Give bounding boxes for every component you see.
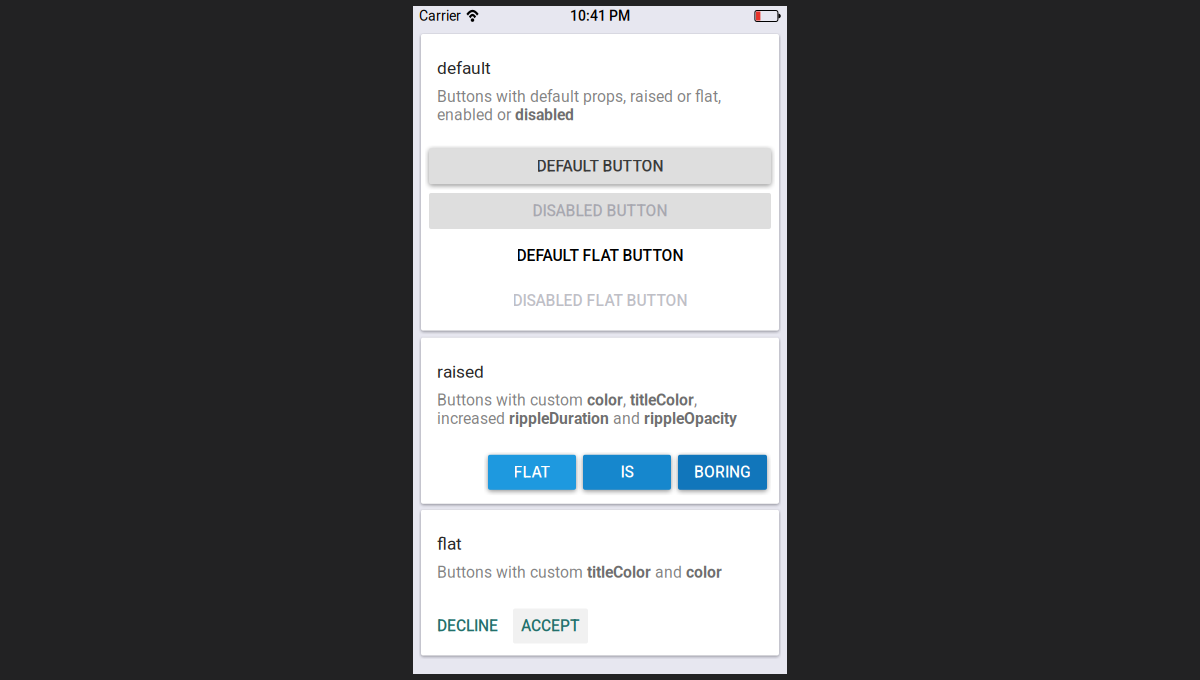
staticText: DEFAULT BUTTON — [536, 157, 663, 175]
button[interactable]: IS — [583, 455, 671, 490]
button[interactable]: DISABLED BUTTON — [429, 193, 771, 229]
staticText: increased — [437, 409, 509, 428]
staticText: Buttons with custom — [437, 391, 587, 409]
button[interactable]: BORING — [678, 455, 767, 490]
staticText: rippleDuration — [509, 409, 609, 428]
staticText: , — [694, 391, 697, 409]
staticText: IS — [620, 463, 633, 481]
staticText: color — [686, 563, 722, 581]
staticText: enabled or — [437, 106, 515, 124]
staticText: ACCEPT — [521, 617, 580, 635]
staticText: flat — [437, 534, 462, 554]
staticText: Buttons with default props, raised or fl… — [437, 87, 721, 106]
button[interactable]: DEFAULT FLAT BUTTON — [429, 238, 771, 274]
staticText: BORING — [694, 463, 751, 481]
button[interactable]: ACCEPT — [513, 608, 588, 643]
button[interactable]: FLAT — [488, 455, 576, 490]
staticText: rippleOpacity — [644, 409, 737, 428]
staticText: default — [437, 58, 491, 78]
staticText: and — [609, 409, 644, 428]
staticText: Buttons with custom — [437, 563, 587, 581]
staticText: raised — [437, 362, 484, 382]
staticText: DISABLED FLAT BUTTON — [512, 291, 687, 310]
staticText: titleColor — [630, 391, 694, 409]
staticText: titleColor — [587, 563, 651, 581]
staticText: 10:41 PM — [570, 8, 630, 24]
staticText: color — [587, 391, 623, 409]
staticText: Carrier — [419, 8, 461, 24]
staticText: DISABLED BUTTON — [532, 202, 667, 220]
staticText: FLAT — [513, 463, 550, 481]
button[interactable]: DEFAULT BUTTON — [429, 148, 771, 184]
staticText: disabled — [515, 106, 574, 124]
staticText: DEFAULT FLAT BUTTON — [516, 247, 683, 265]
button[interactable]: DECLINE — [429, 608, 506, 643]
staticText: , — [623, 391, 630, 409]
staticText: DECLINE — [437, 617, 498, 635]
staticText: and — [651, 563, 686, 581]
button[interactable]: DISABLED FLAT BUTTON — [429, 283, 771, 319]
